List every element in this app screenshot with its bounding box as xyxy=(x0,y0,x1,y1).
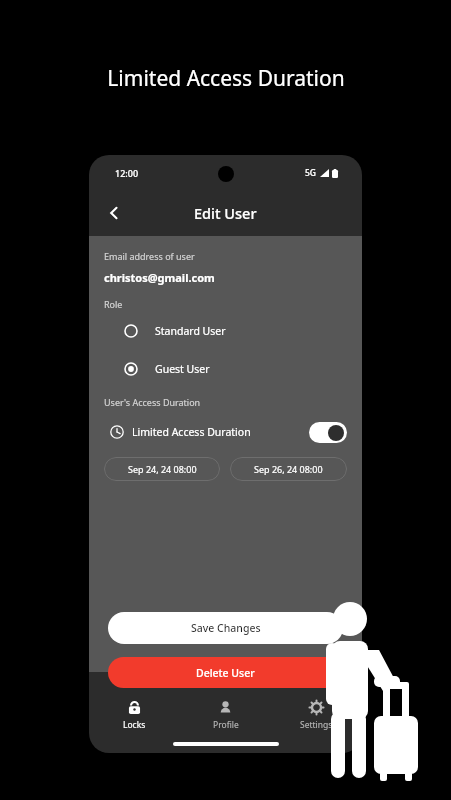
staticText: Email address of user xyxy=(104,250,195,262)
staticText: Settings xyxy=(300,719,333,731)
button[interactable]: Sep 24, 24 08:00 xyxy=(104,457,220,481)
button[interactable]: Locks xyxy=(89,693,180,737)
staticText: 5G xyxy=(305,167,317,179)
staticText: Limited Access Duration xyxy=(132,425,251,439)
staticText: Edit User xyxy=(194,203,257,223)
button[interactable]: Limited Access Duration xyxy=(104,419,347,445)
button[interactable]: Guest User xyxy=(104,359,347,379)
staticText: Profile xyxy=(213,719,239,731)
staticText: 12:00 xyxy=(115,167,139,179)
staticText: Delete User xyxy=(196,666,255,680)
button[interactable]: Profile xyxy=(180,693,271,737)
staticText: User's Access Duration xyxy=(104,396,201,408)
staticText: Sep 24, 24 08:00 xyxy=(128,463,197,475)
button[interactable]: Settings xyxy=(271,693,362,737)
staticText: Sep 26, 24 08:00 xyxy=(254,463,323,475)
button[interactable]: Sep 26, 24 08:00 xyxy=(230,457,347,481)
staticText: Role xyxy=(104,298,123,310)
button[interactable]: Delete User xyxy=(108,657,343,688)
button[interactable]: Standard User xyxy=(104,321,347,341)
staticText: Standard User xyxy=(155,324,226,338)
button[interactable]: Save Changes xyxy=(108,612,343,644)
staticText: Locks xyxy=(123,719,146,731)
staticText: Guest User xyxy=(155,362,210,376)
staticText: Limited Access Duration xyxy=(107,64,345,93)
button[interactable]: Back xyxy=(99,198,129,228)
staticText: Save Changes xyxy=(191,621,261,635)
staticText: christos@gmail.com xyxy=(104,270,215,285)
